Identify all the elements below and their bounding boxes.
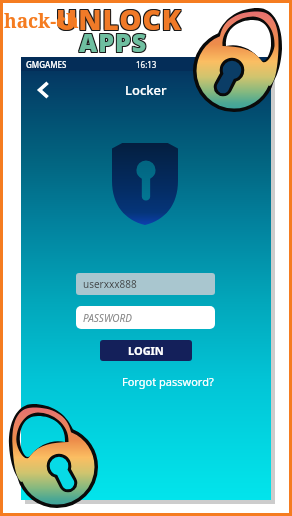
staticText: Locker [125, 81, 167, 99]
button[interactable]: LOGIN [100, 340, 192, 361]
staticText: userxxx888 [83, 277, 137, 291]
staticText: LOGIN [128, 343, 164, 358]
staticText: GMGAMES [26, 59, 67, 70]
staticText: APPS [79, 26, 148, 60]
button[interactable]: Forgot password? [122, 374, 214, 389]
staticText: hack-ch [4, 8, 79, 34]
staticText: APPS [80, 24, 149, 58]
button[interactable]: PASSWORD [76, 306, 215, 329]
staticText: APPS [79, 25, 148, 59]
staticText: PASSWORD [83, 311, 132, 325]
staticText: UNLOCK [57, 0, 184, 37]
staticText: UNLOCK [57, 1, 184, 39]
staticText: UNLOCK [56, 0, 183, 38]
staticText: UNLOCK [55, 0, 182, 37]
staticText: UNLOCK [55, 1, 182, 39]
staticText: UNLOCK [57, 0, 184, 38]
staticText: UNLOCK [56, 1, 183, 39]
staticText: APPS [79, 24, 148, 58]
staticText: APPS [78, 25, 147, 59]
staticText: APPS [80, 26, 149, 60]
staticText: Forgot password? [122, 374, 214, 389]
staticText: UNLOCK [56, 0, 183, 37]
button[interactable]: Back [31, 77, 57, 103]
staticText: 16:13 [136, 59, 157, 70]
button[interactable]: userxxx888 [76, 273, 215, 295]
staticText: APPS [78, 26, 147, 60]
staticText: APPS [80, 25, 149, 59]
staticText: UNLOCK [55, 0, 182, 38]
staticText: APPS [78, 24, 147, 58]
